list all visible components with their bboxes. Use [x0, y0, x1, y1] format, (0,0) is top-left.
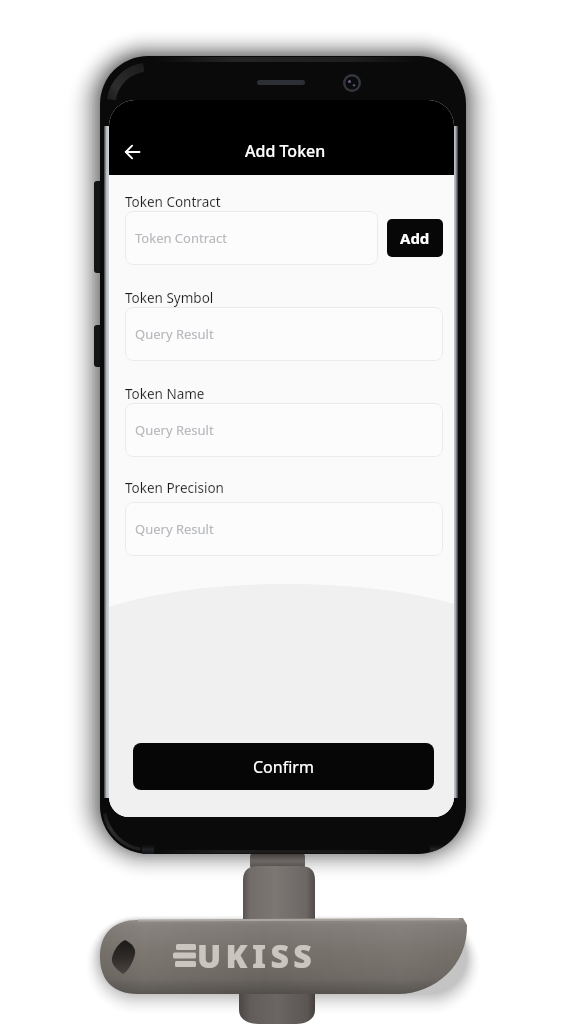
button[interactable]: Confirm	[133, 743, 434, 790]
staticText: Add	[400, 228, 430, 248]
staticText: Query Result	[135, 325, 214, 343]
staticText: Query Result	[135, 520, 214, 538]
staticText: Token Symbol	[125, 289, 214, 307]
staticText: Token Precision	[125, 479, 224, 497]
button[interactable]: Token Contract	[125, 211, 378, 265]
staticText: Add Token	[245, 140, 326, 162]
button[interactable]: Add	[387, 219, 443, 257]
staticText: UKISS	[197, 934, 317, 978]
staticText: Confirm	[253, 756, 314, 778]
button[interactable]: Query Result	[125, 403, 443, 457]
staticText: Token Contract	[125, 193, 221, 211]
staticText: Query Result	[135, 421, 214, 439]
staticText: Token Contract	[135, 229, 228, 247]
button[interactable]: Query Result	[125, 307, 443, 361]
button[interactable]: Query Result	[125, 502, 443, 556]
staticText: Token Name	[125, 385, 205, 403]
button[interactable]: Back	[111, 131, 153, 173]
